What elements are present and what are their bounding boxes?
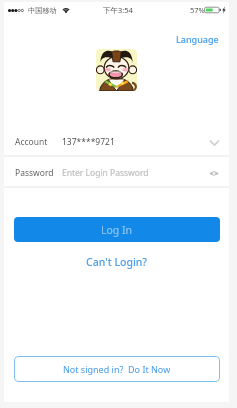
staticText: Account [15, 136, 48, 148]
button[interactable]: Log In [14, 217, 220, 242]
other: Show password [209, 170, 219, 177]
button[interactable]: Password [4, 157, 229, 188]
staticText: 中国移动 [28, 6, 57, 15]
button[interactable]: Can't Login? [80, 251, 153, 273]
button[interactable]: Language [170, 28, 225, 49]
staticText: Password [15, 167, 54, 179]
staticText: Not signed in? Do It Now [63, 363, 171, 375]
staticText: Log In [101, 223, 133, 237]
other: Select account [210, 140, 219, 146]
staticText: 下午3:54 [103, 5, 133, 15]
staticText: Can't Login? [86, 255, 148, 269]
button[interactable]: Not signed in? Do It Now [14, 356, 220, 382]
staticText: Language [176, 33, 219, 45]
button[interactable]: Profile photo [96, 49, 137, 91]
staticText: 137****9721 [62, 136, 115, 148]
button[interactable]: Account [4, 126, 229, 157]
staticText: 57% [190, 5, 205, 15]
staticText: Enter Login Password [62, 167, 149, 179]
